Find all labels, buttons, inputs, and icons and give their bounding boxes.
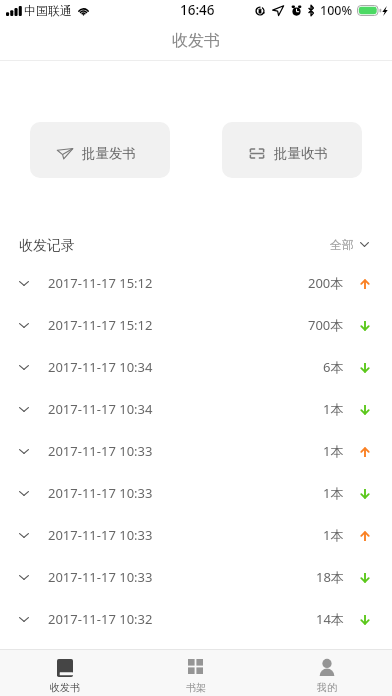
button[interactable]: 2017-11-17 10:34 — [0, 388, 392, 430]
staticText: 我的 — [317, 681, 337, 694]
staticText: 6本 — [323, 358, 344, 376]
button[interactable]: 书架 — [130, 650, 261, 696]
button[interactable]: 2017-11-17 10:32 — [0, 598, 392, 640]
staticText: 书架 — [186, 681, 206, 694]
staticText: 中国联通 — [24, 3, 72, 18]
staticText: 1本 — [323, 442, 344, 460]
staticText: 2017-11-17 10:34 — [48, 358, 153, 376]
button[interactable]: 2017-11-17 10:33 — [0, 430, 392, 472]
staticText: 批量发书 — [82, 145, 136, 162]
staticText: 全部 — [330, 237, 354, 252]
staticText: 1本 — [323, 400, 344, 418]
button[interactable]: 我的 — [261, 650, 392, 696]
staticText: 200本 — [308, 274, 344, 292]
staticText: 2017-11-17 10:33 — [48, 568, 153, 586]
button[interactable]: 收发书 — [0, 650, 130, 696]
staticText: 收发记录 — [19, 237, 75, 255]
button[interactable]: 2017-11-17 15:12 — [0, 304, 392, 346]
staticText: 700本 — [308, 316, 344, 334]
staticText: 18本 — [316, 568, 344, 586]
staticText: 收发书 — [50, 681, 80, 694]
staticText: 100% — [320, 2, 353, 19]
button[interactable]: 批量发书 — [30, 122, 170, 178]
staticText: 2017-11-17 15:12 — [48, 274, 153, 292]
staticText: 2017-11-17 15:12 — [48, 316, 153, 334]
staticText: 1本 — [323, 526, 344, 544]
staticText: 14本 — [316, 610, 344, 628]
button[interactable]: 2017-11-17 15:12 — [0, 262, 392, 304]
staticText: 2017-11-17 10:32 — [48, 610, 153, 628]
button[interactable]: 2017-11-17 10:34 — [0, 346, 392, 388]
staticText: 16:46 — [180, 1, 215, 19]
button[interactable]: 2017-11-17 10:33 — [0, 472, 392, 514]
staticText: 2017-11-17 10:34 — [48, 400, 153, 418]
staticText: 收发书 — [172, 31, 220, 51]
button[interactable]: 全部 — [330, 237, 369, 252]
button[interactable]: 批量收书 — [222, 122, 362, 178]
button[interactable]: 2017-11-17 10:33 — [0, 514, 392, 556]
staticText: 2017-11-17 10:33 — [48, 526, 153, 544]
staticText: 2017-11-17 10:33 — [48, 484, 153, 502]
staticText: 批量收书 — [274, 145, 328, 162]
button[interactable]: 2017-11-17 10:33 — [0, 556, 392, 598]
staticText: 2017-11-17 10:33 — [48, 442, 153, 460]
staticText: 1本 — [323, 484, 344, 502]
